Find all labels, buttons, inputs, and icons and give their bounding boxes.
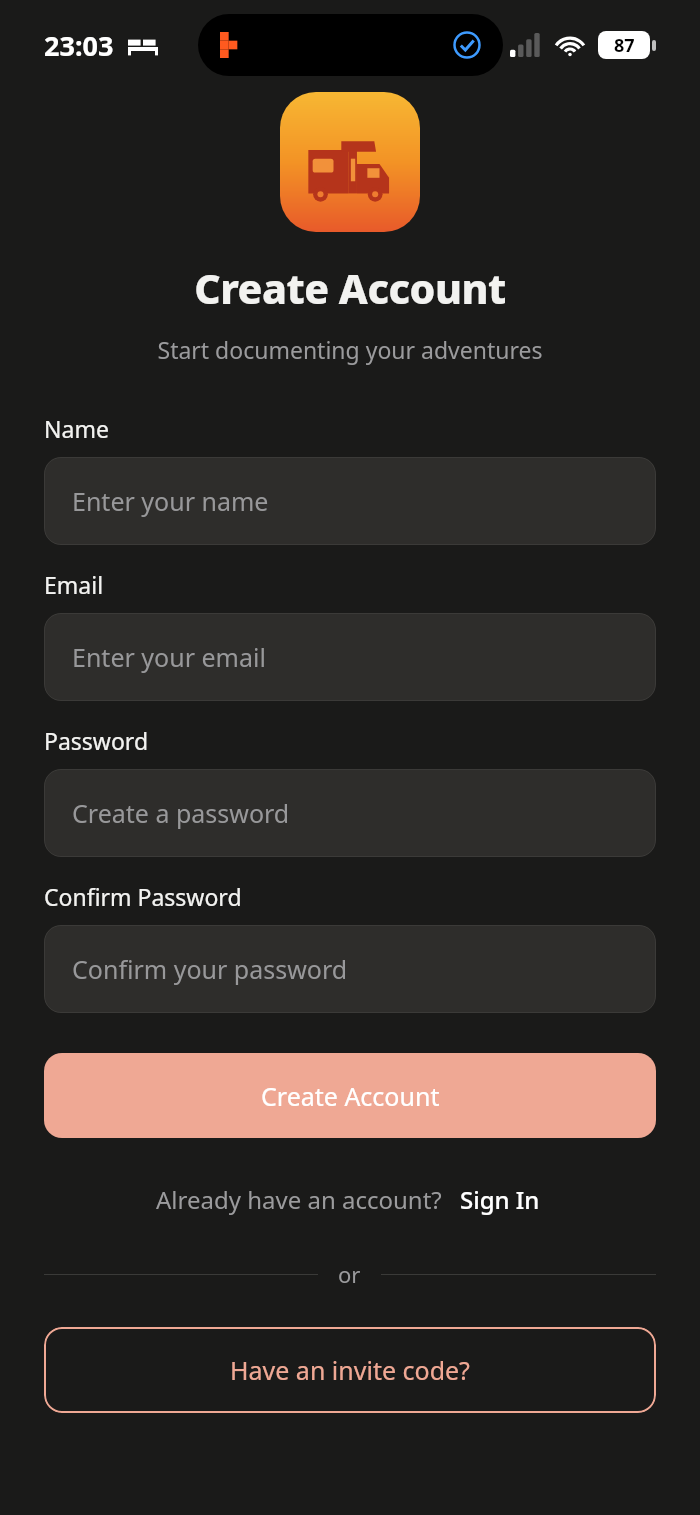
staticText: Have an invite code? — [230, 1353, 470, 1387]
staticText: Create Account — [0, 260, 700, 316]
staticText: Create a password — [72, 796, 290, 830]
staticText: Sign In — [460, 1183, 540, 1216]
button[interactable]: Sign In — [456, 1180, 544, 1219]
button[interactable]: Enter your name — [44, 457, 656, 545]
staticText: Name — [44, 413, 109, 444]
staticText: Enter your email — [72, 640, 266, 674]
staticText: Enter your name — [72, 484, 269, 518]
button[interactable]: Have an invite code? — [44, 1327, 656, 1413]
button[interactable]: Create a password — [44, 769, 656, 857]
staticText: Start documenting your adventures — [0, 334, 700, 365]
staticText: Password — [44, 725, 149, 756]
staticText: Confirm your password — [72, 952, 348, 986]
button[interactable]: Create Account — [44, 1053, 656, 1138]
staticText: or — [338, 1259, 361, 1289]
staticText: 23:03 — [44, 27, 114, 64]
button[interactable]: Enter your email — [44, 613, 656, 701]
staticText: Email — [44, 569, 104, 600]
staticText: Confirm Password — [44, 881, 242, 912]
staticText: 87 — [614, 33, 635, 58]
button[interactable]: Confirm your password — [44, 925, 656, 1013]
staticText: Already have an account? — [156, 1183, 442, 1216]
staticText: Create Account — [261, 1079, 440, 1113]
